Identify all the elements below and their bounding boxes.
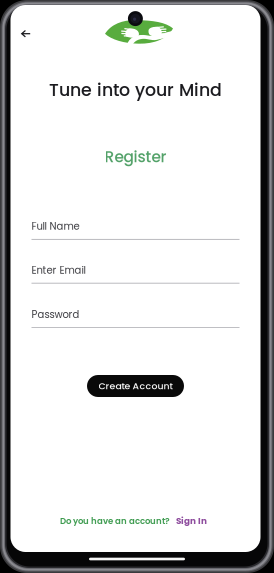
staticText: Tune into your Mind: [49, 78, 222, 102]
button[interactable]: Back: [14, 22, 38, 46]
staticText: Do you have an account?: [60, 515, 170, 527]
staticText: Sign In: [176, 515, 207, 527]
button[interactable]: Create Account: [87, 375, 184, 397]
staticText: Full Name: [31, 219, 79, 233]
staticText: Create Account: [98, 379, 172, 393]
staticText: Password: [31, 307, 79, 321]
staticText: Register: [104, 146, 166, 168]
button[interactable]: Sign In: [176, 515, 207, 527]
staticText: Enter Email: [31, 263, 85, 277]
